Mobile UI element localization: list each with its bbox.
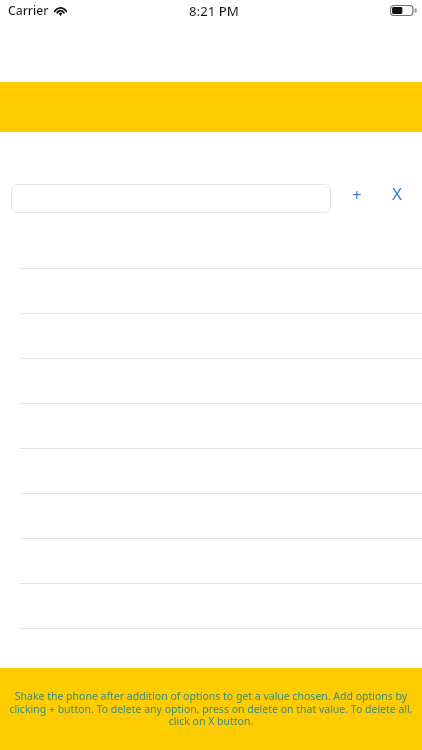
button[interactable]: Option row	[0, 584, 422, 629]
button[interactable]: Option row	[0, 494, 422, 539]
button[interactable]: Option row	[0, 224, 422, 269]
button[interactable]: Delete all options	[376, 181, 422, 216]
button[interactable]: Add option	[331, 181, 376, 216]
button[interactable]: Option row	[0, 539, 422, 584]
staticText: X	[392, 182, 402, 205]
staticText: Shake the phone after addition of option…	[8, 689, 414, 728]
button[interactable]: Option text field	[11, 184, 331, 213]
button[interactable]: Option row	[0, 314, 422, 359]
button[interactable]: Option row	[0, 269, 422, 314]
button[interactable]: Option row	[0, 404, 422, 449]
staticText: +	[352, 183, 362, 206]
button[interactable]: Option row	[0, 449, 422, 494]
staticText: 8:21 PM	[189, 2, 239, 20]
button[interactable]: Option row	[0, 359, 422, 404]
staticText: Carrier	[8, 2, 49, 19]
